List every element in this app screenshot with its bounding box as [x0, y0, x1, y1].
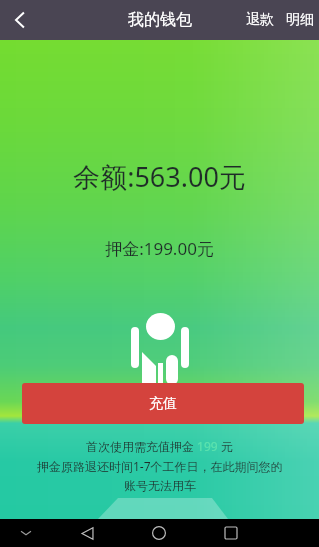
button[interactable]: Home: [123, 519, 195, 547]
staticText: 首次使用需充值押金 199 元: [86, 438, 233, 454]
staticText: 充值: [149, 395, 177, 413]
staticText: 账号无法用车: [124, 478, 196, 493]
staticText: 押金原路退还时间1-7个工作日，在此期间您的: [37, 458, 283, 474]
staticText: 退款: [246, 11, 274, 29]
staticText: 明细: [286, 11, 314, 29]
button[interactable]: Hide keyboard: [0, 519, 52, 547]
button[interactable]: 退款: [240, 2, 280, 38]
button[interactable]: Back: [52, 519, 123, 547]
button[interactable]: Recent apps: [195, 519, 267, 547]
button[interactable]: 充值: [22, 383, 304, 424]
staticText: 押金:199.00元: [0, 237, 319, 260]
button[interactable]: Back: [0, 0, 40, 40]
staticText: 余额:563.00元: [0, 158, 319, 195]
button[interactable]: 明细: [280, 2, 319, 38]
staticText: 我的钱包: [128, 10, 192, 30]
